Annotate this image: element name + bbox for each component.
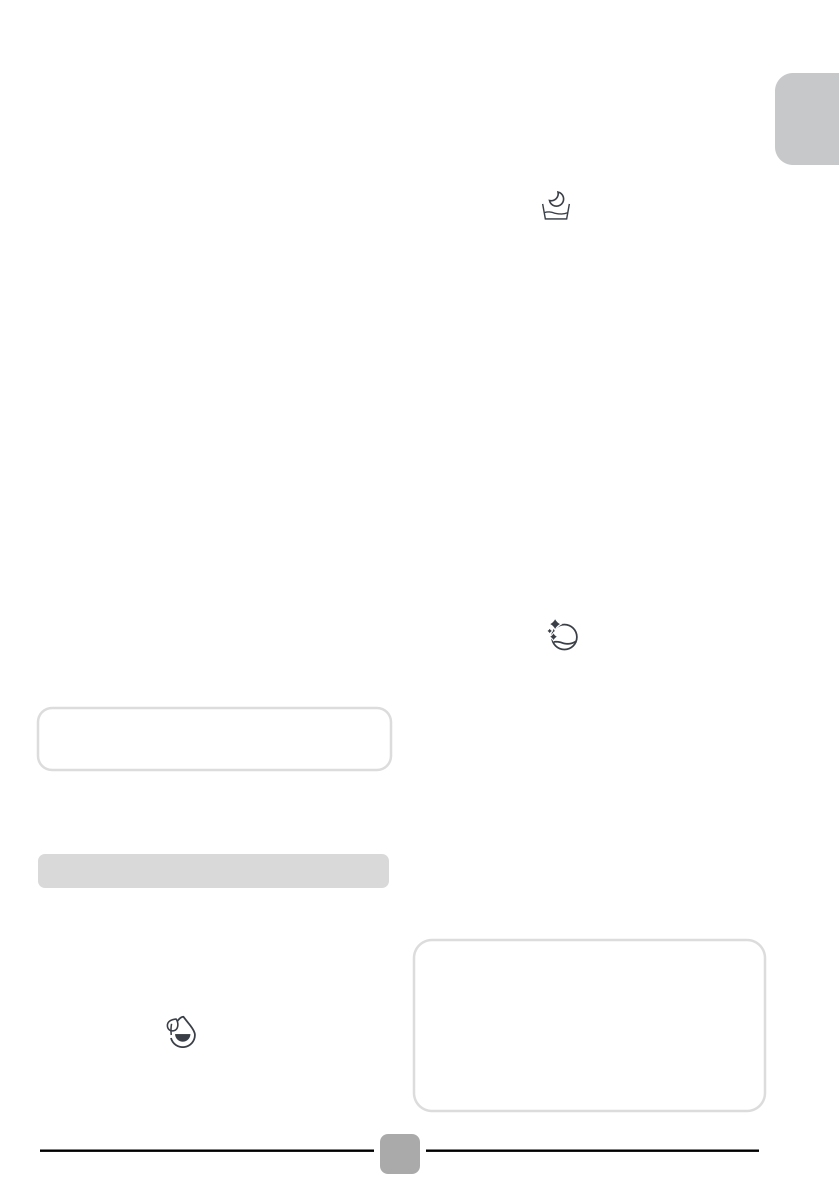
button[interactable]: Details card: [414, 940, 765, 1111]
button[interactable]: Night wash: [541, 190, 571, 220]
button[interactable]: Open: [775, 73, 839, 165]
button[interactable]: Page indicator: [380, 1134, 420, 1174]
button[interactable]: Eco wash: [165, 1015, 197, 1047]
button[interactable]: Text field: [38, 708, 391, 770]
button[interactable]: Refresh cycle: [546, 618, 578, 650]
